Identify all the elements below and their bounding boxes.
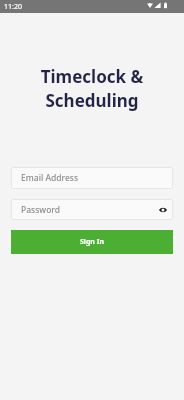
button[interactable]: Show password [156, 203, 170, 217]
staticText: 11:20 [4, 2, 22, 12]
staticText: Email Address [21, 172, 79, 184]
button[interactable]: Email Address [11, 167, 173, 189]
staticText: Sign In [80, 237, 105, 247]
staticText: Password [21, 204, 61, 216]
button[interactable]: Sign In [11, 230, 173, 254]
staticText: Timeclock & Scheduling [0, 65, 184, 112]
button[interactable]: Password [11, 199, 173, 220]
